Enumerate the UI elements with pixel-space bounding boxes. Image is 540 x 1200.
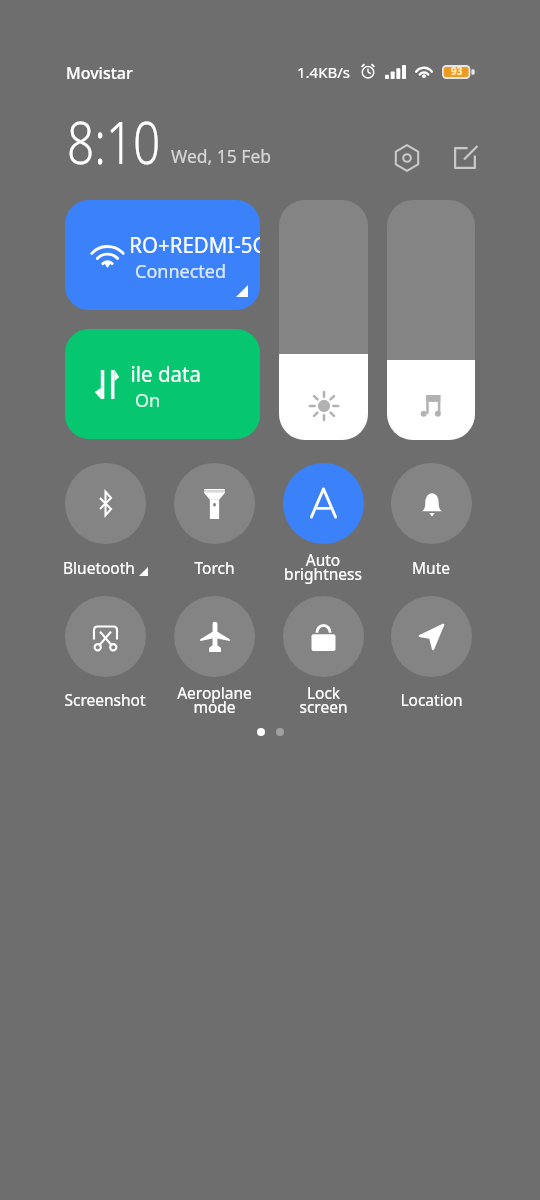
- button[interactable]: Volume: [387, 200, 475, 440]
- staticText: Screenshot: [64, 689, 146, 710]
- staticText: Aeroplane mode: [177, 682, 252, 718]
- staticText: Movistar: [66, 62, 133, 84]
- button[interactable]: Mobile data: [65, 329, 260, 439]
- staticText: Mute: [412, 557, 450, 578]
- staticText: Bluetooth: [63, 557, 135, 578]
- button[interactable]: Torch: [160, 463, 268, 590]
- staticText: On: [135, 388, 161, 413]
- button[interactable]: Lock screen: [269, 596, 377, 722]
- button[interactable]: Settings: [386, 137, 428, 179]
- staticText: Location: [400, 689, 463, 710]
- button[interactable]: Brightness: [279, 200, 368, 440]
- button[interactable]: Mute: [377, 463, 485, 590]
- staticText: Connected: [135, 259, 227, 284]
- staticText: Lock screen: [299, 682, 348, 718]
- button[interactable]: Bluetooth: [51, 463, 159, 590]
- button[interactable]: Edit quick settings: [444, 137, 486, 179]
- button[interactable]: Location: [377, 596, 485, 722]
- button[interactable]: MAKRO+REDMI-5G: [65, 200, 260, 310]
- staticText: 8:10: [67, 101, 161, 181]
- staticText: Torch: [194, 557, 235, 578]
- staticText: Auto brightness: [284, 549, 362, 585]
- staticText: Mobile data: [131, 358, 260, 388]
- staticText: MAKRO+REDMI-5G: [131, 229, 260, 259]
- staticText: 1.4KB/s: [297, 62, 350, 82]
- staticText: Wed, 15 Feb: [171, 144, 272, 168]
- staticText: 93: [451, 64, 463, 78]
- button[interactable]: Screenshot: [51, 596, 159, 722]
- button[interactable]: Auto brightness: [269, 463, 377, 590]
- button[interactable]: Aeroplane mode: [160, 596, 268, 722]
